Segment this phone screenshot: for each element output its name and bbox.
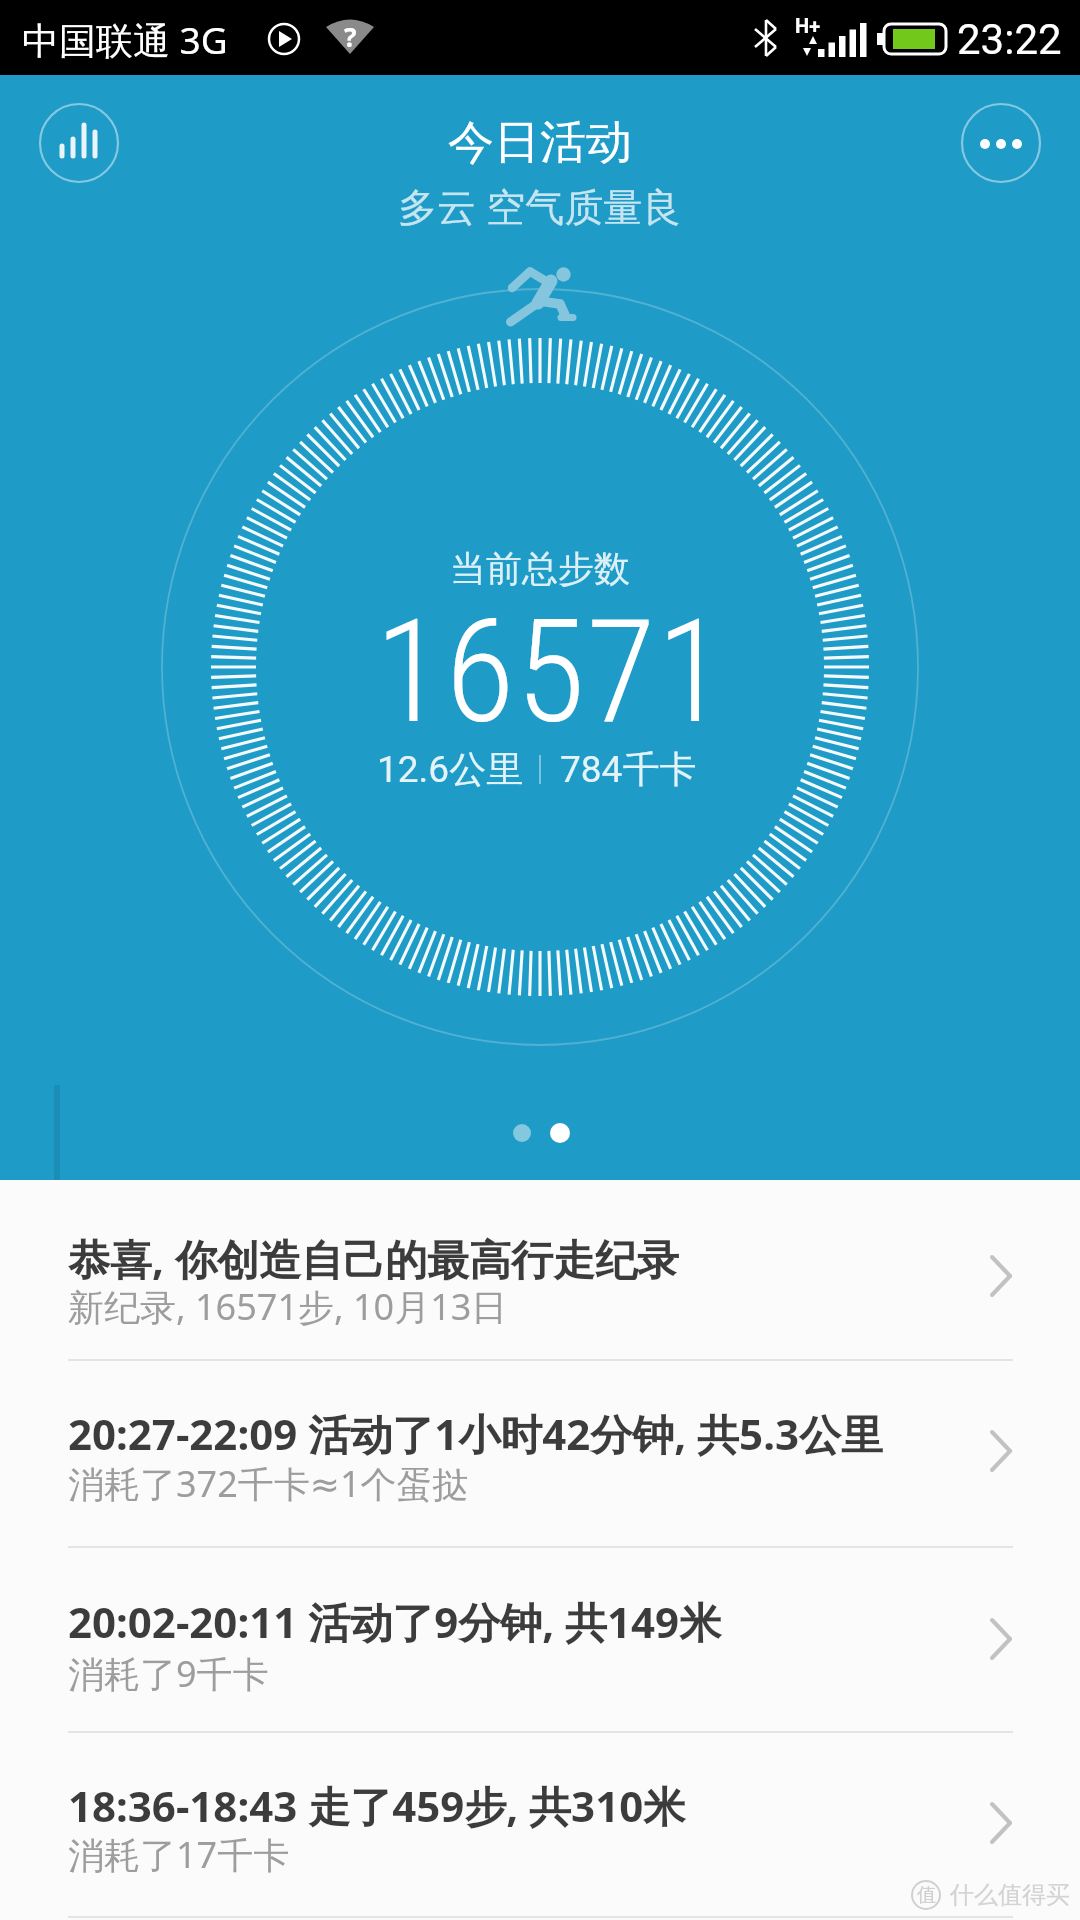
staticText: 16571 bbox=[375, 589, 728, 755]
staticText: 20:27-22:09 活动了1小时42分钟, 共5.3公里 bbox=[68, 1405, 883, 1462]
staticText: 20:02-20:11 活动了9分钟, 共149米 bbox=[68, 1593, 722, 1650]
staticText: 23:22 bbox=[957, 15, 1062, 64]
staticText: 当前总步数 bbox=[450, 546, 630, 591]
button[interactable] bbox=[962, 104, 1040, 182]
staticText: 多云 空气质量良 bbox=[398, 179, 682, 232]
button[interactable]: 恭喜, 你创造自己的最高行走纪录 bbox=[0, 1180, 1080, 1360]
staticText: 18:36-18:43 走了459步, 共310米 bbox=[68, 1777, 686, 1834]
staticText: H+ bbox=[795, 14, 821, 37]
staticText: 消耗了372千卡≈1个蛋挞 bbox=[68, 1459, 469, 1508]
staticText: 消耗了9千卡 bbox=[68, 1649, 269, 1698]
staticText: 值 bbox=[917, 1883, 936, 1907]
staticText: 恭喜, 你创造自己的最高行走纪录 bbox=[68, 1230, 679, 1287]
button[interactable]: 20:02-20:11 活动了9分钟, 共149米 bbox=[0, 1547, 1080, 1732]
staticText: 中国联通 3G bbox=[22, 14, 228, 65]
button[interactable]: 18:36-18:43 走了459步, 共310米 bbox=[0, 1732, 1080, 1917]
button[interactable] bbox=[40, 104, 118, 182]
staticText: 什么值得买 bbox=[950, 1880, 1070, 1910]
staticText: 新纪录, 16571步, 10月13日 bbox=[68, 1282, 508, 1331]
staticText: 今日活动 bbox=[448, 114, 632, 172]
staticText: 消耗了17千卡 bbox=[68, 1830, 290, 1879]
staticText: 784千卡 bbox=[560, 746, 697, 793]
staticText: 12.6公里 bbox=[377, 746, 524, 793]
staticText: ? bbox=[344, 19, 357, 54]
button[interactable]: 20:27-22:09 活动了1小时42分钟, 共5.3公里 bbox=[0, 1360, 1080, 1547]
